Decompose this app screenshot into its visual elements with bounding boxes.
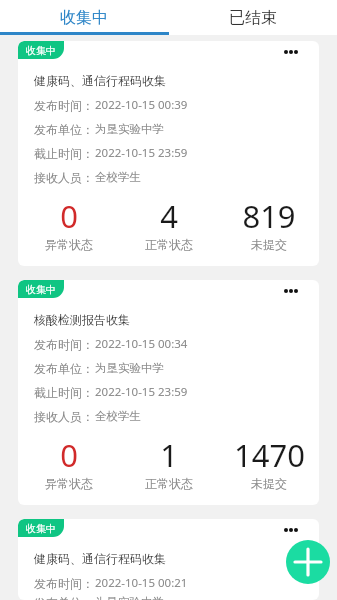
staticText: 4 (160, 195, 178, 237)
staticText: 1470 (234, 434, 305, 476)
staticText: 未提交 (251, 237, 287, 252)
staticText: 已结束 (229, 8, 277, 28)
staticText: 发布单位： (34, 361, 94, 376)
staticText: 核酸检测报告收集 (34, 312, 130, 327)
staticText: 0 (60, 434, 78, 476)
staticText: 发布时间： (34, 337, 94, 352)
staticText: 收集中 (60, 8, 108, 28)
button[interactable]: 已结束 (168, 0, 337, 35)
staticText: 正常状态 (145, 476, 193, 491)
staticText: 收集中 (26, 44, 56, 57)
staticText: 健康码、通信行程码收集 (34, 73, 166, 88)
staticText: 2022-10-15 00:39 (95, 97, 188, 113)
staticText: 0 (60, 195, 78, 237)
staticText: 2022-10-15 00:21 (95, 575, 188, 591)
staticText: 2022-10-15 00:34 (95, 336, 188, 352)
staticText: 发布时间： (34, 576, 94, 591)
staticText: 发布时间： (34, 98, 94, 113)
button[interactable]: 新建 (286, 540, 330, 584)
button[interactable]: 收集中 (18, 519, 319, 600)
button[interactable]: 收集中 (18, 41, 319, 266)
staticText: 全校学生 (95, 170, 141, 184)
staticText: 异常状态 (45, 476, 93, 491)
staticText: 819 (242, 195, 296, 237)
button[interactable]: 更多 (277, 41, 305, 63)
staticText: 收集中 (26, 522, 56, 535)
staticText: 接收人员： (34, 170, 94, 185)
button[interactable]: 更多 (277, 280, 305, 302)
staticText: 未提交 (251, 476, 287, 491)
button[interactable]: 更多 (277, 519, 305, 541)
staticText: 为垦实验中学 (95, 122, 164, 136)
staticText: 全校学生 (95, 409, 141, 423)
staticText: 为垦实验中学 (95, 595, 164, 600)
staticText: 发布单位： (34, 595, 94, 600)
staticText: 2022-10-15 23:59 (95, 384, 188, 400)
staticText: 接收人员： (34, 409, 94, 424)
staticText: 收集中 (26, 283, 56, 296)
staticText: 正常状态 (145, 237, 193, 252)
staticText: 发布单位： (34, 122, 94, 137)
staticText: 1 (160, 434, 178, 476)
staticText: 异常状态 (45, 237, 93, 252)
staticText: 截止时间： (34, 146, 94, 161)
button[interactable]: 收集中 (18, 280, 319, 505)
staticText: 截止时间： (34, 385, 94, 400)
button[interactable]: 收集中 (0, 0, 168, 35)
staticText: 2022-10-15 23:59 (95, 145, 188, 161)
staticText: 为垦实验中学 (95, 361, 164, 375)
staticText: 健康码、通信行程码收集 (34, 551, 166, 566)
